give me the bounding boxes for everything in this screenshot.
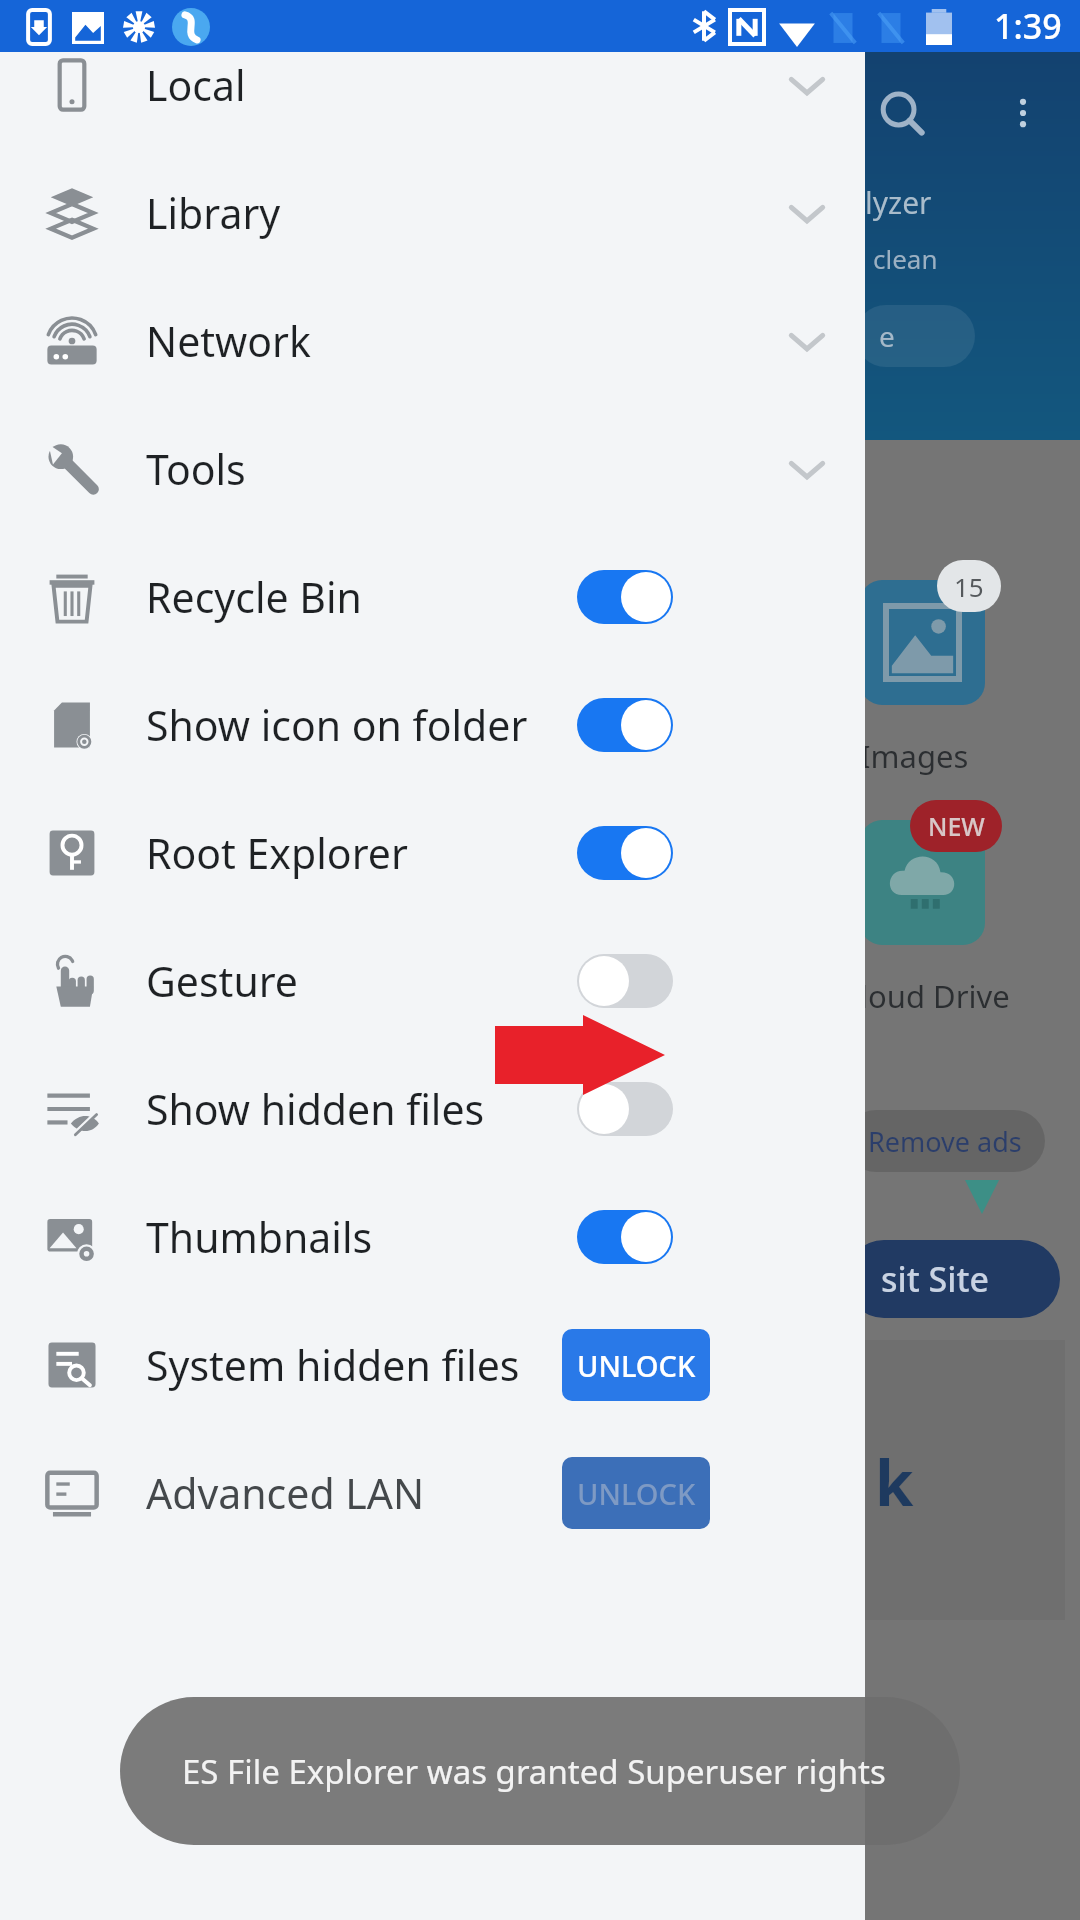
button[interactable] [577, 826, 673, 880]
staticText: lyzer [865, 182, 932, 223]
staticText: UNLOCK [577, 1346, 696, 1385]
button[interactable]: Recycle Bin [0, 533, 865, 661]
staticText: k [875, 1440, 914, 1524]
staticText: System hidden files [146, 1337, 520, 1393]
staticText: 1:39 [994, 3, 1062, 49]
staticText: Network [146, 313, 311, 369]
button[interactable] [577, 1210, 673, 1264]
staticText: Thumbnails [146, 1209, 373, 1265]
staticText: sit Site [881, 1256, 989, 1302]
staticText: Tools [146, 441, 246, 497]
button[interactable]: UNLOCK [562, 1457, 710, 1529]
button[interactable]: e [855, 305, 975, 367]
button[interactable]: Thumbnails [0, 1173, 865, 1301]
button[interactable] [860, 820, 985, 945]
staticText: Advanced LAN [146, 1465, 425, 1521]
button[interactable] [860, 580, 985, 705]
button[interactable] [577, 1082, 673, 1136]
button[interactable]: Show hidden files [0, 1045, 865, 1173]
button[interactable]: Advanced LAN [0, 1429, 865, 1557]
staticText: Recycle Bin [146, 569, 362, 625]
staticText: 15 [954, 569, 984, 604]
button[interactable]: System hidden files [0, 1301, 865, 1429]
staticText: clean [873, 241, 938, 276]
staticText: e [879, 317, 895, 355]
button[interactable]: Gesture [0, 917, 865, 1045]
staticText: Library [146, 185, 281, 241]
button[interactable]: Root Explorer [0, 789, 865, 917]
staticText: Gesture [146, 953, 298, 1009]
staticText: Show icon on folder [146, 697, 528, 753]
staticText: Local [146, 57, 246, 113]
button[interactable]: More options [995, 85, 1051, 141]
staticText: ES File Explorer was granted Superuser r… [182, 1749, 886, 1794]
staticText: Root Explorer [146, 825, 408, 881]
button[interactable]: UNLOCK [562, 1329, 710, 1401]
staticText: Show hidden files [146, 1081, 485, 1137]
button[interactable]: Show icon on folder [0, 661, 865, 789]
button[interactable]: Local [0, 21, 865, 149]
button[interactable]: Tools [0, 405, 865, 533]
button[interactable]: sit Site [845, 1240, 1060, 1318]
button[interactable]: Search [865, 78, 935, 148]
staticText: Remove ads [868, 1123, 1022, 1160]
staticText: loud Drive [860, 975, 1010, 1017]
button[interactable]: Library [0, 149, 865, 277]
button[interactable]: Remove ads [845, 1110, 1045, 1172]
button[interactable] [577, 954, 673, 1008]
button[interactable] [577, 698, 673, 752]
button[interactable]: Network [0, 277, 865, 405]
staticText: UNLOCK [577, 1474, 696, 1513]
staticText: NEW [928, 809, 985, 843]
button[interactable] [577, 570, 673, 624]
staticText: Images [860, 735, 969, 777]
